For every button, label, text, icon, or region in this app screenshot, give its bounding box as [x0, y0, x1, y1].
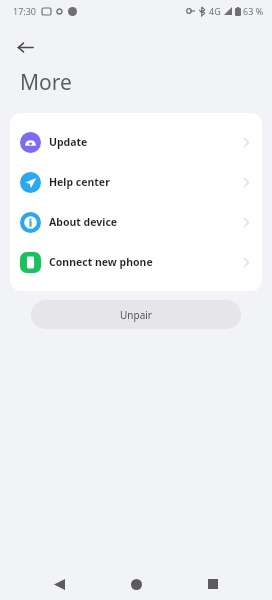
- staticText: Update: [49, 135, 88, 149]
- button[interactable]: Back: [41, 568, 77, 600]
- button[interactable]: About device: [10, 202, 262, 242]
- button[interactable]: Help center: [10, 162, 262, 202]
- staticText: 63 %: [243, 5, 264, 17]
- staticText: More: [20, 68, 72, 97]
- button[interactable]: Recent apps: [195, 568, 231, 600]
- button[interactable]: Update: [10, 122, 262, 162]
- staticText: Connect new phone: [49, 255, 153, 269]
- button[interactable]: Connect new phone: [10, 242, 262, 282]
- staticText: 17:30: [13, 5, 37, 17]
- button[interactable]: Home: [118, 568, 154, 600]
- staticText: Unpair: [120, 308, 152, 322]
- button[interactable]: Back: [8, 30, 42, 64]
- staticText: Help center: [49, 175, 110, 189]
- staticText: About device: [49, 215, 118, 229]
- button[interactable]: Unpair: [31, 300, 241, 329]
- staticText: 4G: [209, 5, 221, 17]
